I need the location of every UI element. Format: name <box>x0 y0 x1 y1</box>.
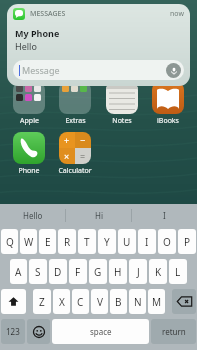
staticText: I <box>163 210 166 221</box>
button[interactable]: return <box>151 319 196 344</box>
button[interactable]: 123 <box>1 319 25 344</box>
staticText: + <box>64 134 70 146</box>
staticText: A <box>15 265 22 279</box>
staticText: U <box>123 235 131 249</box>
button[interactable]: V <box>91 289 108 314</box>
button[interactable]: N <box>129 289 146 314</box>
button[interactable]: Apple <box>6 82 52 126</box>
staticText: I <box>145 235 149 249</box>
staticText: space <box>90 326 112 337</box>
staticText: Hi <box>95 210 103 221</box>
button[interactable]: P <box>178 229 196 254</box>
staticText: D <box>54 265 62 279</box>
button[interactable]: Messages <box>7 4 190 86</box>
button[interactable]: I <box>138 229 156 254</box>
other: Messages <box>13 8 25 20</box>
staticText: L <box>175 265 181 279</box>
button[interactable]: C <box>72 289 89 314</box>
button[interactable]: R <box>58 229 76 254</box>
button[interactable]: Z <box>33 289 51 314</box>
staticText: N <box>134 295 142 309</box>
staticText: W <box>24 235 34 249</box>
staticText: Y <box>104 235 110 249</box>
staticText: Message <box>22 64 60 76</box>
staticText: Phone <box>18 166 40 176</box>
staticText: now <box>170 9 184 19</box>
button[interactable]: Message <box>13 60 184 80</box>
staticText: − <box>80 134 86 146</box>
button[interactable]: Hi <box>66 204 131 226</box>
staticText: C <box>77 295 84 309</box>
staticText: Z <box>39 295 45 309</box>
button[interactable]: Dictate <box>166 63 181 78</box>
button[interactable]: K <box>149 259 167 284</box>
staticText: Q <box>6 235 14 249</box>
staticText: O <box>163 235 171 249</box>
staticText: 123 <box>6 326 20 337</box>
staticText: F <box>75 265 81 279</box>
staticText: S <box>35 265 41 279</box>
staticText: M <box>152 295 162 309</box>
button[interactable]: O <box>158 229 176 254</box>
button[interactable]: L <box>169 259 187 284</box>
button[interactable]: Emoji <box>27 319 50 344</box>
button[interactable]: Q <box>1 229 18 254</box>
button[interactable]: T <box>78 229 96 254</box>
staticText: X <box>59 295 65 309</box>
button[interactable]: Shift <box>1 289 26 314</box>
staticText: Hello <box>15 40 37 52</box>
staticText: Hello <box>23 210 43 221</box>
button[interactable]: Y <box>98 229 116 254</box>
button[interactable]: F <box>69 259 87 284</box>
button[interactable]: I <box>132 204 197 226</box>
staticText: Apple <box>20 116 39 126</box>
button[interactable]: Hello <box>0 204 65 226</box>
button[interactable]: D <box>49 259 67 284</box>
button[interactable]: Notes <box>99 82 145 126</box>
button[interactable]: H <box>109 259 127 284</box>
button[interactable]: + <box>52 132 98 176</box>
staticText: MESSAGES <box>30 9 66 19</box>
staticText: iBooks <box>157 116 179 126</box>
staticText: H <box>114 265 122 279</box>
button[interactable]: A <box>10 259 27 284</box>
button[interactable]: W <box>20 229 37 254</box>
button[interactable]: X <box>53 289 70 314</box>
staticText: Notes <box>112 116 132 126</box>
staticText: K <box>155 265 162 279</box>
staticText: G <box>94 265 102 279</box>
staticText: R <box>64 235 71 249</box>
button[interactable]: B <box>110 289 127 314</box>
button[interactable]: J <box>129 259 147 284</box>
staticText: return <box>162 326 186 337</box>
staticText: B <box>115 295 122 309</box>
staticText: P <box>184 235 191 249</box>
staticText: E <box>45 235 51 249</box>
button[interactable]: iBooks <box>145 82 191 126</box>
button[interactable]: Extras <box>52 82 98 126</box>
staticText: My Phone <box>15 27 60 39</box>
button[interactable]: E <box>39 229 56 254</box>
staticText: Calculator <box>58 166 92 176</box>
staticText: J <box>137 265 140 279</box>
button[interactable]: U <box>118 229 136 254</box>
button[interactable]: space <box>52 319 149 344</box>
button[interactable]: Phone <box>6 132 52 176</box>
staticText: = <box>80 150 86 162</box>
button[interactable]: M <box>148 289 165 314</box>
staticText: Extras <box>65 116 86 126</box>
staticText: V <box>97 295 103 309</box>
staticText: × <box>64 150 70 162</box>
staticText: T <box>84 235 90 249</box>
button[interactable]: Backspace <box>172 289 196 314</box>
button[interactable]: G <box>89 259 107 284</box>
button[interactable]: S <box>29 259 47 284</box>
